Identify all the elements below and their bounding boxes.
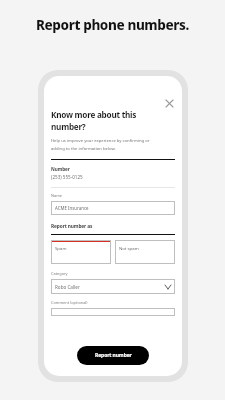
staticText: ACME Insurance: [55, 205, 89, 211]
button[interactable]: [51, 308, 175, 316]
button[interactable]: ACME Insurance: [51, 201, 175, 215]
staticText: Report number: [95, 352, 132, 359]
staticText: Not spam: [119, 245, 139, 251]
staticText: Report number as: [51, 223, 93, 230]
staticText: Number: [51, 166, 70, 172]
staticText: (253) 555-0125: [51, 174, 83, 180]
staticText: Category: [51, 271, 68, 276]
staticText: Name: [51, 193, 62, 198]
staticText: adding to the information below.: [51, 146, 116, 152]
staticText: Comment (optional): [51, 300, 88, 305]
button[interactable]: Not spam: [115, 240, 175, 264]
staticText: Report phone numbers.: [36, 16, 189, 34]
staticText: Robo Caller: [55, 284, 80, 290]
button[interactable]: Spam: [51, 240, 111, 264]
button[interactable]: Report number: [77, 346, 149, 365]
button[interactable]: Robo Caller: [51, 279, 175, 294]
staticText: Know more about this: [51, 109, 137, 120]
staticText: Spam: [55, 245, 67, 251]
staticText: number?: [51, 121, 86, 132]
button[interactable]: Close: [160, 94, 178, 112]
staticText: Help us improve your experience by confi…: [51, 138, 150, 144]
